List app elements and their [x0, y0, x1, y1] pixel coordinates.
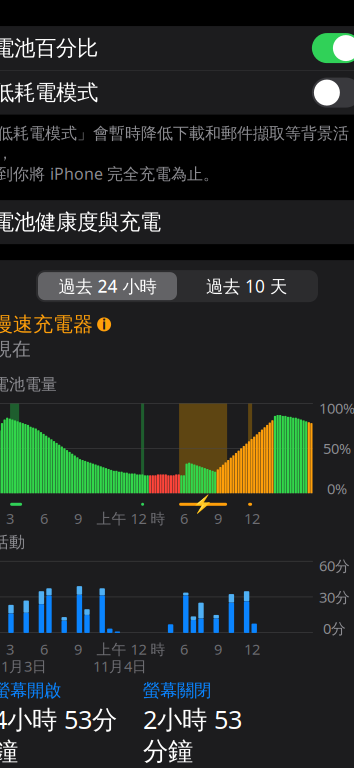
- staticText: 電池電量: [0, 375, 57, 394]
- staticText: 6: [40, 508, 48, 528]
- staticText: 低耗電模式: [0, 79, 98, 106]
- staticText: 9: [74, 508, 82, 528]
- staticText: 0%: [327, 479, 347, 498]
- staticText: 現在: [0, 338, 31, 361]
- staticText: 4小時 53分鐘: [0, 702, 117, 767]
- staticText: 6: [180, 508, 188, 528]
- staticText: 30分: [319, 587, 350, 607]
- staticText: 9: [74, 639, 82, 659]
- staticText: 活動: [0, 532, 25, 552]
- button[interactable]: 電池百分比: [0, 26, 354, 70]
- staticText: i: [102, 316, 106, 333]
- staticText: 過去 10 天: [206, 275, 287, 298]
- staticText: 60分: [319, 556, 350, 575]
- staticText: 電池健康度與充電: [0, 209, 161, 235]
- staticText: 上午 12 時: [97, 639, 166, 659]
- button[interactable]: 低耗電模式: [0, 71, 354, 115]
- staticText: 螢幕關閉: [143, 680, 211, 701]
- staticText: 3: [6, 508, 14, 528]
- staticText: 螢幕開啟: [0, 680, 61, 701]
- staticText: 上午 12 時: [97, 508, 166, 528]
- staticText: 50%: [323, 438, 351, 458]
- staticText: 6: [180, 639, 188, 659]
- button[interactable]: 過去 24 小時: [38, 272, 177, 300]
- staticText: ⚡: [192, 494, 214, 514]
- staticText: 「低耗電模式」會暫時降低下載和郵件擷取等背景活動， 直到你將 iPhone 完全…: [0, 124, 349, 184]
- staticText: 11月4日: [93, 656, 147, 676]
- staticText: 100%: [319, 398, 354, 418]
- staticText: 0分: [323, 618, 346, 638]
- staticText: 9: [214, 508, 222, 528]
- staticText: 9: [214, 639, 222, 659]
- staticText: 3: [6, 639, 14, 659]
- staticText: 12: [244, 508, 260, 528]
- staticText: 12: [244, 639, 260, 659]
- staticText: 慢速充電器: [0, 312, 93, 337]
- button[interactable]: 過去 10 天: [177, 272, 316, 300]
- staticText: 過去 24 小時: [58, 275, 156, 298]
- staticText: 6: [40, 639, 48, 659]
- staticText: 2小時 53分鐘: [143, 702, 242, 767]
- staticText: 11月3日: [0, 656, 47, 676]
- button[interactable]: 電池健康度與充電: [0, 200, 354, 244]
- staticText: 電池百分比: [0, 35, 98, 61]
